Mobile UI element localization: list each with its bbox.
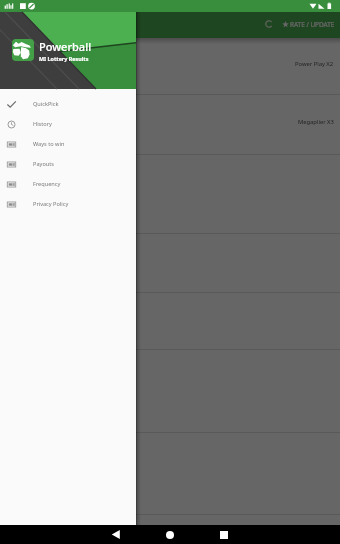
button[interactable]: Megaplier X3 [0, 95, 340, 155]
button[interactable]: Back [103, 525, 127, 544]
button[interactable]: History [0, 114, 136, 134]
button[interactable]: QuickPick [0, 94, 136, 114]
button[interactable]: RATE / UPDATE [278, 20, 336, 29]
button[interactable] [0, 293, 340, 350]
button[interactable]: Recents [212, 525, 236, 544]
button[interactable]: Power Play X2 [0, 38, 340, 95]
staticText: QuickPick [33, 100, 59, 108]
button[interactable]: Frequency [0, 174, 136, 194]
staticText: Power Play X2 [295, 60, 334, 68]
button[interactable]: Ways to win [0, 134, 136, 154]
button[interactable] [0, 350, 340, 433]
staticText: Payouts [33, 160, 54, 168]
button[interactable]: Privacy Policy [0, 194, 136, 214]
button[interactable]: Payouts [0, 154, 136, 174]
staticText: RATE / UPDATE [290, 20, 335, 29]
button[interactable]: Refresh [260, 15, 278, 33]
button[interactable] [0, 155, 340, 234]
staticText: Privacy Policy [33, 200, 69, 208]
staticText: Megaplier X3 [298, 118, 334, 126]
staticText: History [33, 120, 52, 128]
button[interactable]: Home [158, 525, 182, 544]
button[interactable] [0, 234, 340, 293]
staticText: Ways to win [33, 140, 65, 148]
button[interactable] [0, 433, 340, 515]
staticText: Frequency [33, 180, 61, 188]
staticText: Powerball [39, 39, 92, 54]
staticText: MI Lottery Results [39, 55, 89, 62]
